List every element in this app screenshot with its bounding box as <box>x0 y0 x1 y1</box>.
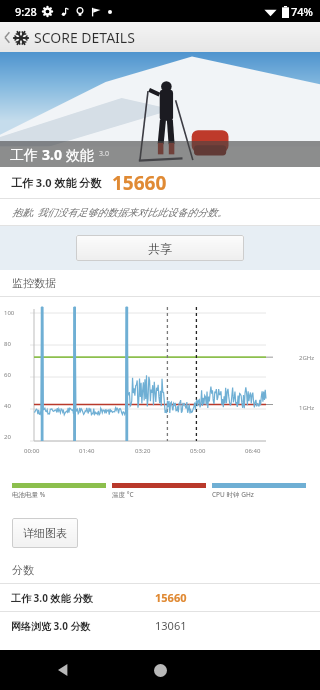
staticText: 效能 <box>62 145 94 164</box>
staticText: CPU 时钟 GHz <box>212 490 254 499</box>
staticText: 详细图表 <box>23 526 67 540</box>
staticText: 工作 3.0 效能 分数 <box>11 175 102 190</box>
staticText: 60 <box>4 371 11 379</box>
staticText: 电池电量 % <box>12 490 46 499</box>
button[interactable]: Back <box>50 656 78 684</box>
staticText: 共享 <box>148 241 172 256</box>
staticText: 15660 <box>112 170 167 196</box>
staticText: 工作 <box>10 145 42 164</box>
button[interactable]: Home <box>146 656 174 684</box>
staticText: 03:20 <box>135 447 151 455</box>
staticText: 74% <box>291 4 313 19</box>
button[interactable]: 工作 3.0 效能 分数 <box>0 584 320 611</box>
staticText: 工作 3.0 效能 分数 <box>11 591 94 605</box>
staticText: 15660 <box>155 590 187 605</box>
button[interactable]: 网络浏览 3.0 分数 <box>0 612 320 639</box>
staticText: 3.0 <box>42 145 62 164</box>
staticText: 9:28 <box>15 4 37 19</box>
staticText: 06:40 <box>245 447 261 455</box>
staticText: 3.0 <box>99 149 109 159</box>
staticText: 13061 <box>155 618 187 633</box>
staticText: 温度 °C <box>112 490 134 499</box>
staticText: 1GHz <box>299 404 315 412</box>
staticText: 100 <box>4 309 15 317</box>
staticText: 20 <box>4 433 11 441</box>
staticText: 80 <box>4 340 11 348</box>
button[interactable]: 共享 <box>76 235 244 261</box>
staticText: 2GHz <box>299 354 315 362</box>
staticText: SCORE DETAILS <box>34 28 135 47</box>
staticText: 05:00 <box>190 447 206 455</box>
staticText: 分数 <box>12 563 34 577</box>
button[interactable]: Back to score details <box>0 22 320 52</box>
staticText: 01:40 <box>79 447 95 455</box>
button[interactable]: 详细图表 <box>12 518 78 548</box>
staticText: 网络浏览 3.0 分数 <box>11 619 91 633</box>
staticText: 监控数据 <box>12 276 56 290</box>
staticText: 40 <box>4 402 11 410</box>
staticText: 抱歉, 我们没有足够的数据来对比此设备的分数。 <box>12 205 228 219</box>
staticText: 00:00 <box>24 447 40 455</box>
